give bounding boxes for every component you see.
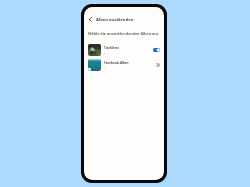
button[interactable]: Facebook-Alben	[84, 59, 164, 71]
staticText: 1	[104, 66, 106, 69]
staticText: Facebook-Alben	[104, 61, 129, 65]
button[interactable]: Hide album off	[153, 63, 160, 67]
staticText: Wähle die auszublendenden Alben aus.	[88, 31, 160, 36]
staticText: Alben ausblenden	[96, 17, 134, 23]
button[interactable]: Back	[85, 14, 96, 25]
staticText: Tischlerei	[104, 46, 119, 50]
button[interactable]: Hide album on	[153, 48, 160, 52]
button[interactable]: Tischlerei	[84, 44, 164, 56]
staticText: 1	[104, 51, 106, 54]
